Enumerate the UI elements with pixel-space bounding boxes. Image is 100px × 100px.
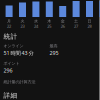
staticText: 火	[20, 19, 24, 23]
staticText: 27	[74, 23, 78, 29]
button[interactable]: 詳細	[4, 91, 18, 100]
staticText: 統計量の計算方法	[4, 79, 36, 84]
staticText: 23	[20, 23, 24, 29]
staticText: 296	[4, 67, 13, 74]
button[interactable]: 統計量の計算方法	[4, 79, 36, 84]
staticText: ポイント	[4, 61, 20, 66]
staticText: オンライン	[4, 43, 24, 48]
staticText: 水	[34, 19, 38, 23]
staticText: 日	[87, 19, 91, 23]
staticText: 22	[7, 23, 11, 29]
staticText: 金	[61, 19, 65, 23]
staticText: 最高	[50, 43, 58, 48]
staticText: 28	[87, 23, 91, 29]
staticText: 25	[47, 23, 51, 29]
staticText: 295	[50, 49, 59, 56]
staticText: 木	[47, 19, 51, 23]
staticText: 24	[34, 23, 38, 29]
staticText: 51 時間 43 分	[4, 49, 34, 56]
staticText: 26	[61, 23, 65, 29]
staticText: 土	[74, 19, 78, 23]
staticText: 統計	[4, 32, 18, 41]
staticText: 詳細	[4, 91, 18, 100]
staticText: 月	[7, 19, 11, 23]
